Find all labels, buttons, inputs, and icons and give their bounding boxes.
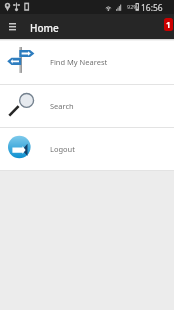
staticText: Find My Nearest: [50, 57, 108, 67]
button[interactable]: Search: [0, 84, 174, 127]
button[interactable]: Notifications, 1 new: [164, 18, 173, 31]
staticText: Search: [50, 101, 74, 111]
staticText: Logout: [50, 144, 75, 154]
staticText: Home: [30, 21, 59, 35]
button[interactable]: Open navigation drawer: [0, 14, 24, 39]
button[interactable]: Logout: [0, 127, 174, 170]
staticText: 16:56: [141, 2, 163, 14]
staticText: 92%: [127, 3, 138, 10]
staticText: 1: [166, 19, 171, 30]
button[interactable]: Find My Nearest: [0, 39, 174, 84]
